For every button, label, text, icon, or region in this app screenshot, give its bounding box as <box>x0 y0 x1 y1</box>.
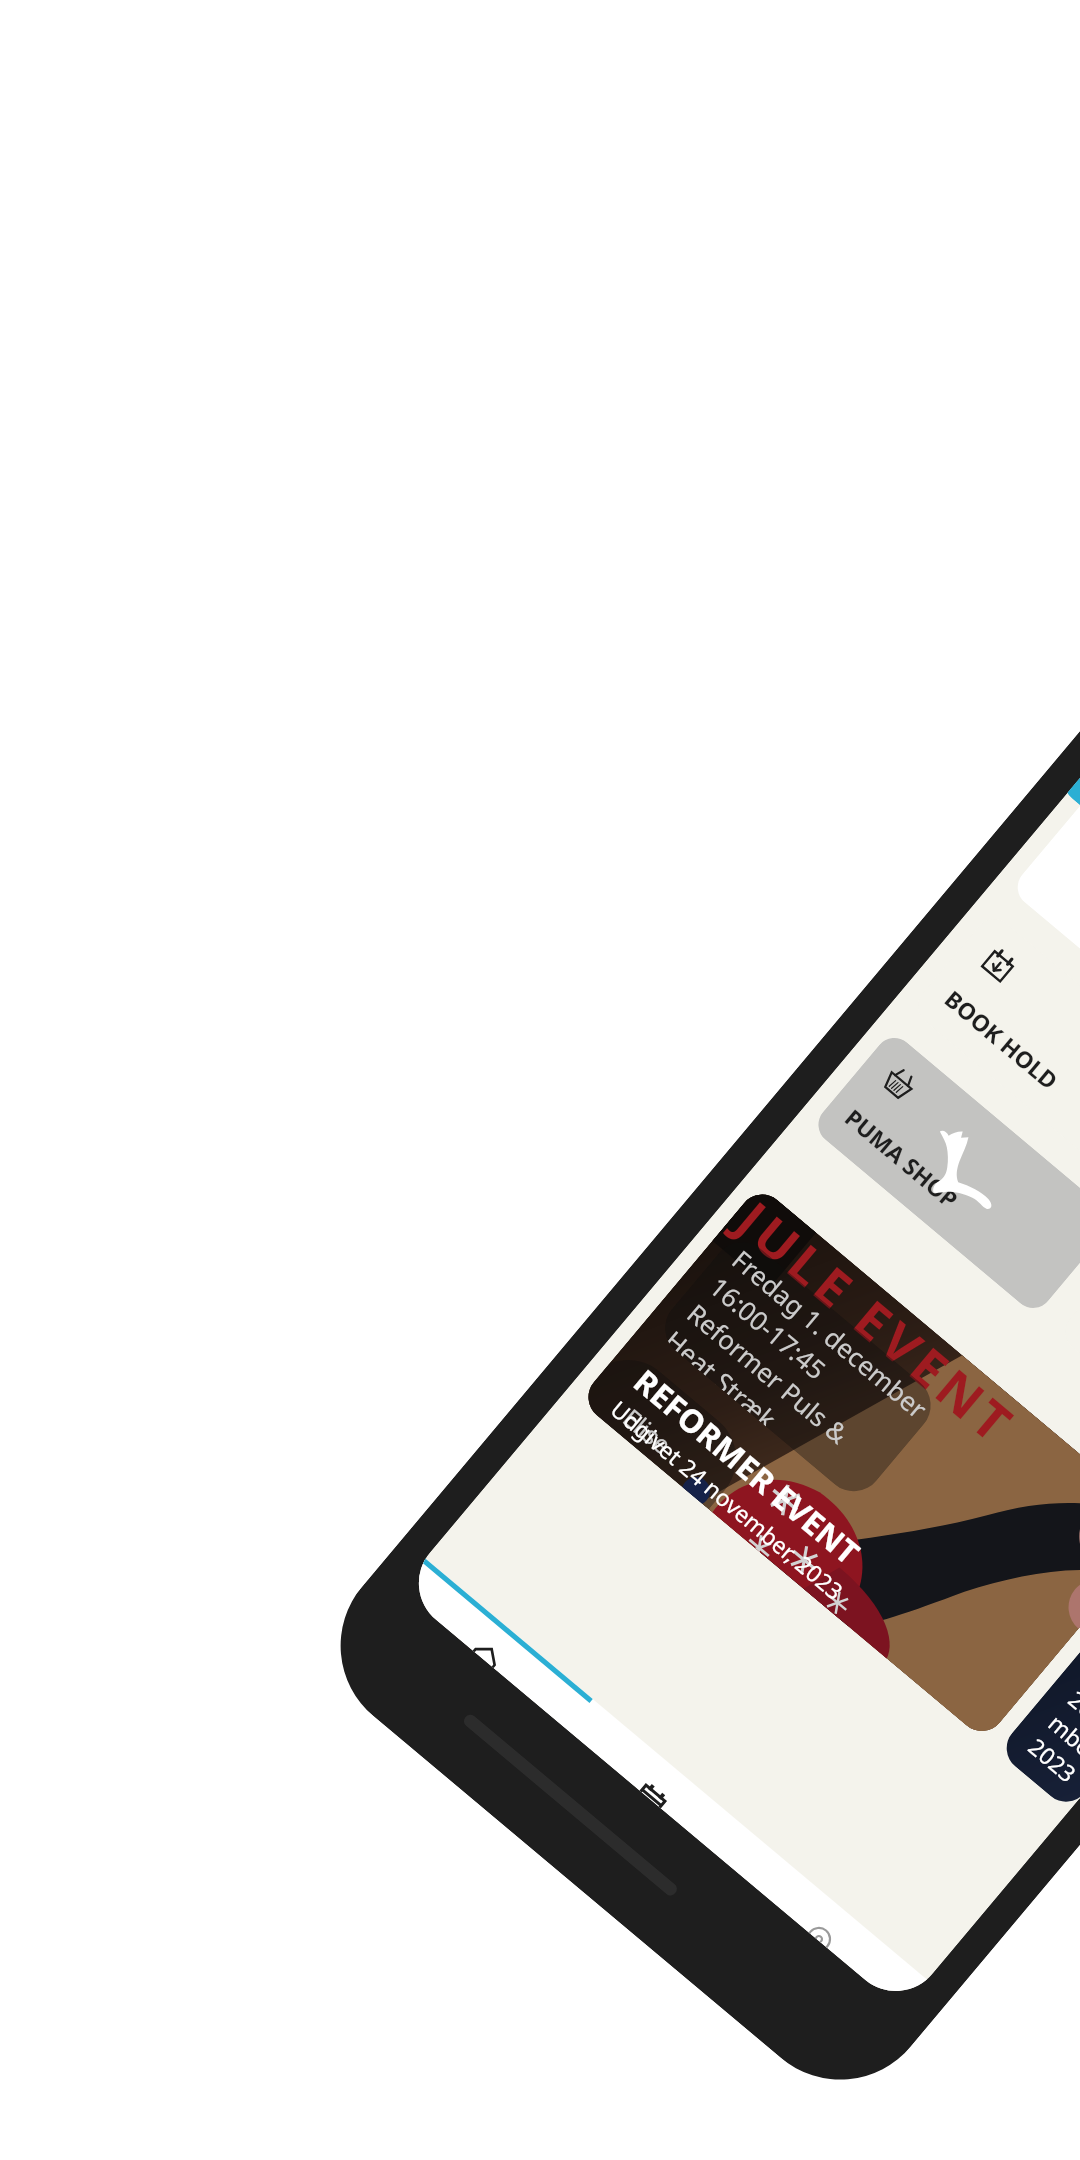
button[interactable] <box>1010 792 1080 1079</box>
staticText: PUMA SHOP <box>839 1101 966 1215</box>
staticText: Udgivet 20 november, 2023 <box>1023 1659 1080 1801</box>
staticText: REFORMER EVENT <box>625 1359 869 1574</box>
staticText: 16:00-17:45 <box>703 1269 834 1387</box>
staticText: Udgivet 24 november, 2023 <box>605 1393 850 1606</box>
button[interactable]: Profile <box>734 1839 927 2011</box>
staticText: Reformer Puls & <box>680 1295 856 1451</box>
staticText: Fosgrau <box>614 1427 689 1491</box>
staticText: Heat Stræk <box>664 1322 784 1428</box>
button[interactable]: TAK <box>997 1536 1080 1811</box>
staticText: Fredag 1. december <box>725 1242 935 1426</box>
staticText: Elise <box>616 1400 679 1461</box>
button[interactable] <box>1066 648 1080 1204</box>
button[interactable]: BOOK HOLD <box>910 911 1080 1197</box>
button[interactable]: Home <box>399 1558 592 1729</box>
staticText: BOOK HOLD <box>939 983 1065 1096</box>
button[interactable] <box>1057 1237 1080 1523</box>
button[interactable]: JULE EVENT <box>579 1185 1080 1741</box>
button[interactable]: Bookings <box>566 1698 760 1870</box>
staticText: JULE EVENT <box>723 1189 1027 1460</box>
button[interactable]: PUMA SHOP <box>810 1030 1080 1316</box>
